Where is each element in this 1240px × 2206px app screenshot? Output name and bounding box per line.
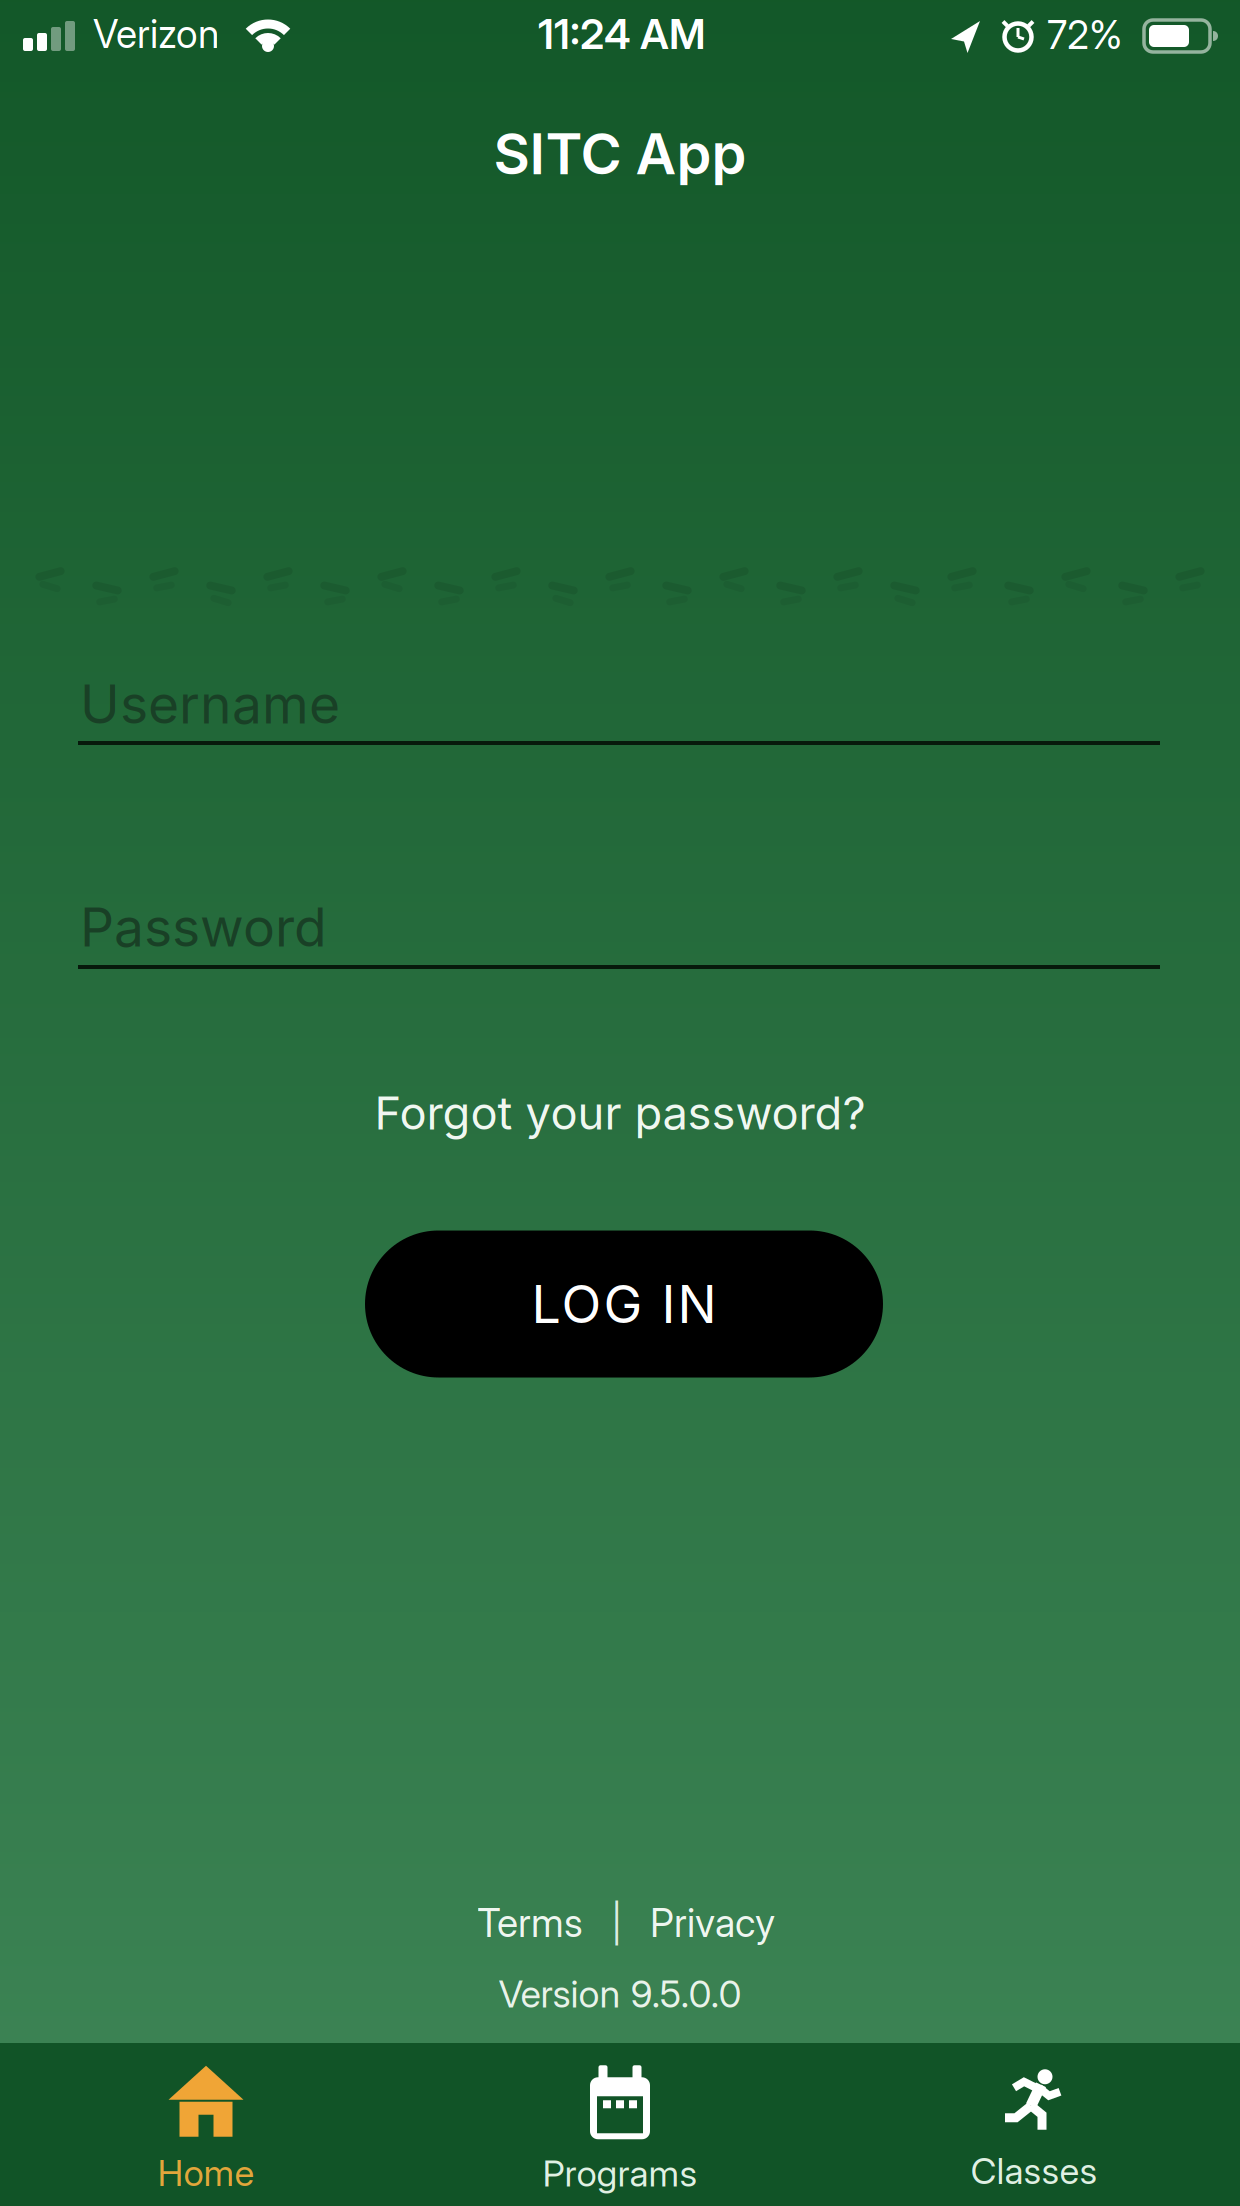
staticText: 11:24 AM: [538, 10, 706, 58]
staticText: Username: [80, 672, 340, 735]
staticText: SITC App: [493, 121, 746, 187]
staticText: Privacy: [650, 1900, 775, 1946]
staticText: Verizon: [93, 11, 219, 57]
staticText: Password: [80, 895, 327, 958]
staticText: 72%: [1047, 12, 1123, 58]
button[interactable]: LOG IN: [365, 1230, 883, 1377]
staticText: Forgot your password?: [374, 1086, 865, 1140]
button[interactable]: Privacy: [650, 1900, 775, 1946]
staticText: Version 9.5.0.0: [498, 1972, 741, 2016]
staticText: Programs: [542, 2152, 697, 2195]
staticText: Classes: [970, 2150, 1097, 2192]
staticText: |: [611, 1901, 622, 1945]
button[interactable]: Terms: [477, 1900, 583, 1946]
staticText: Home: [157, 2152, 254, 2194]
staticText: LOG IN: [531, 1273, 716, 1335]
staticText: Terms: [477, 1900, 583, 1946]
button[interactable]: Programs: [445, 2048, 795, 2206]
button[interactable]: Classes: [859, 2048, 1209, 2206]
button[interactable]: Home: [31, 2048, 381, 2206]
button[interactable]: Forgot your password?: [374, 1086, 865, 1140]
